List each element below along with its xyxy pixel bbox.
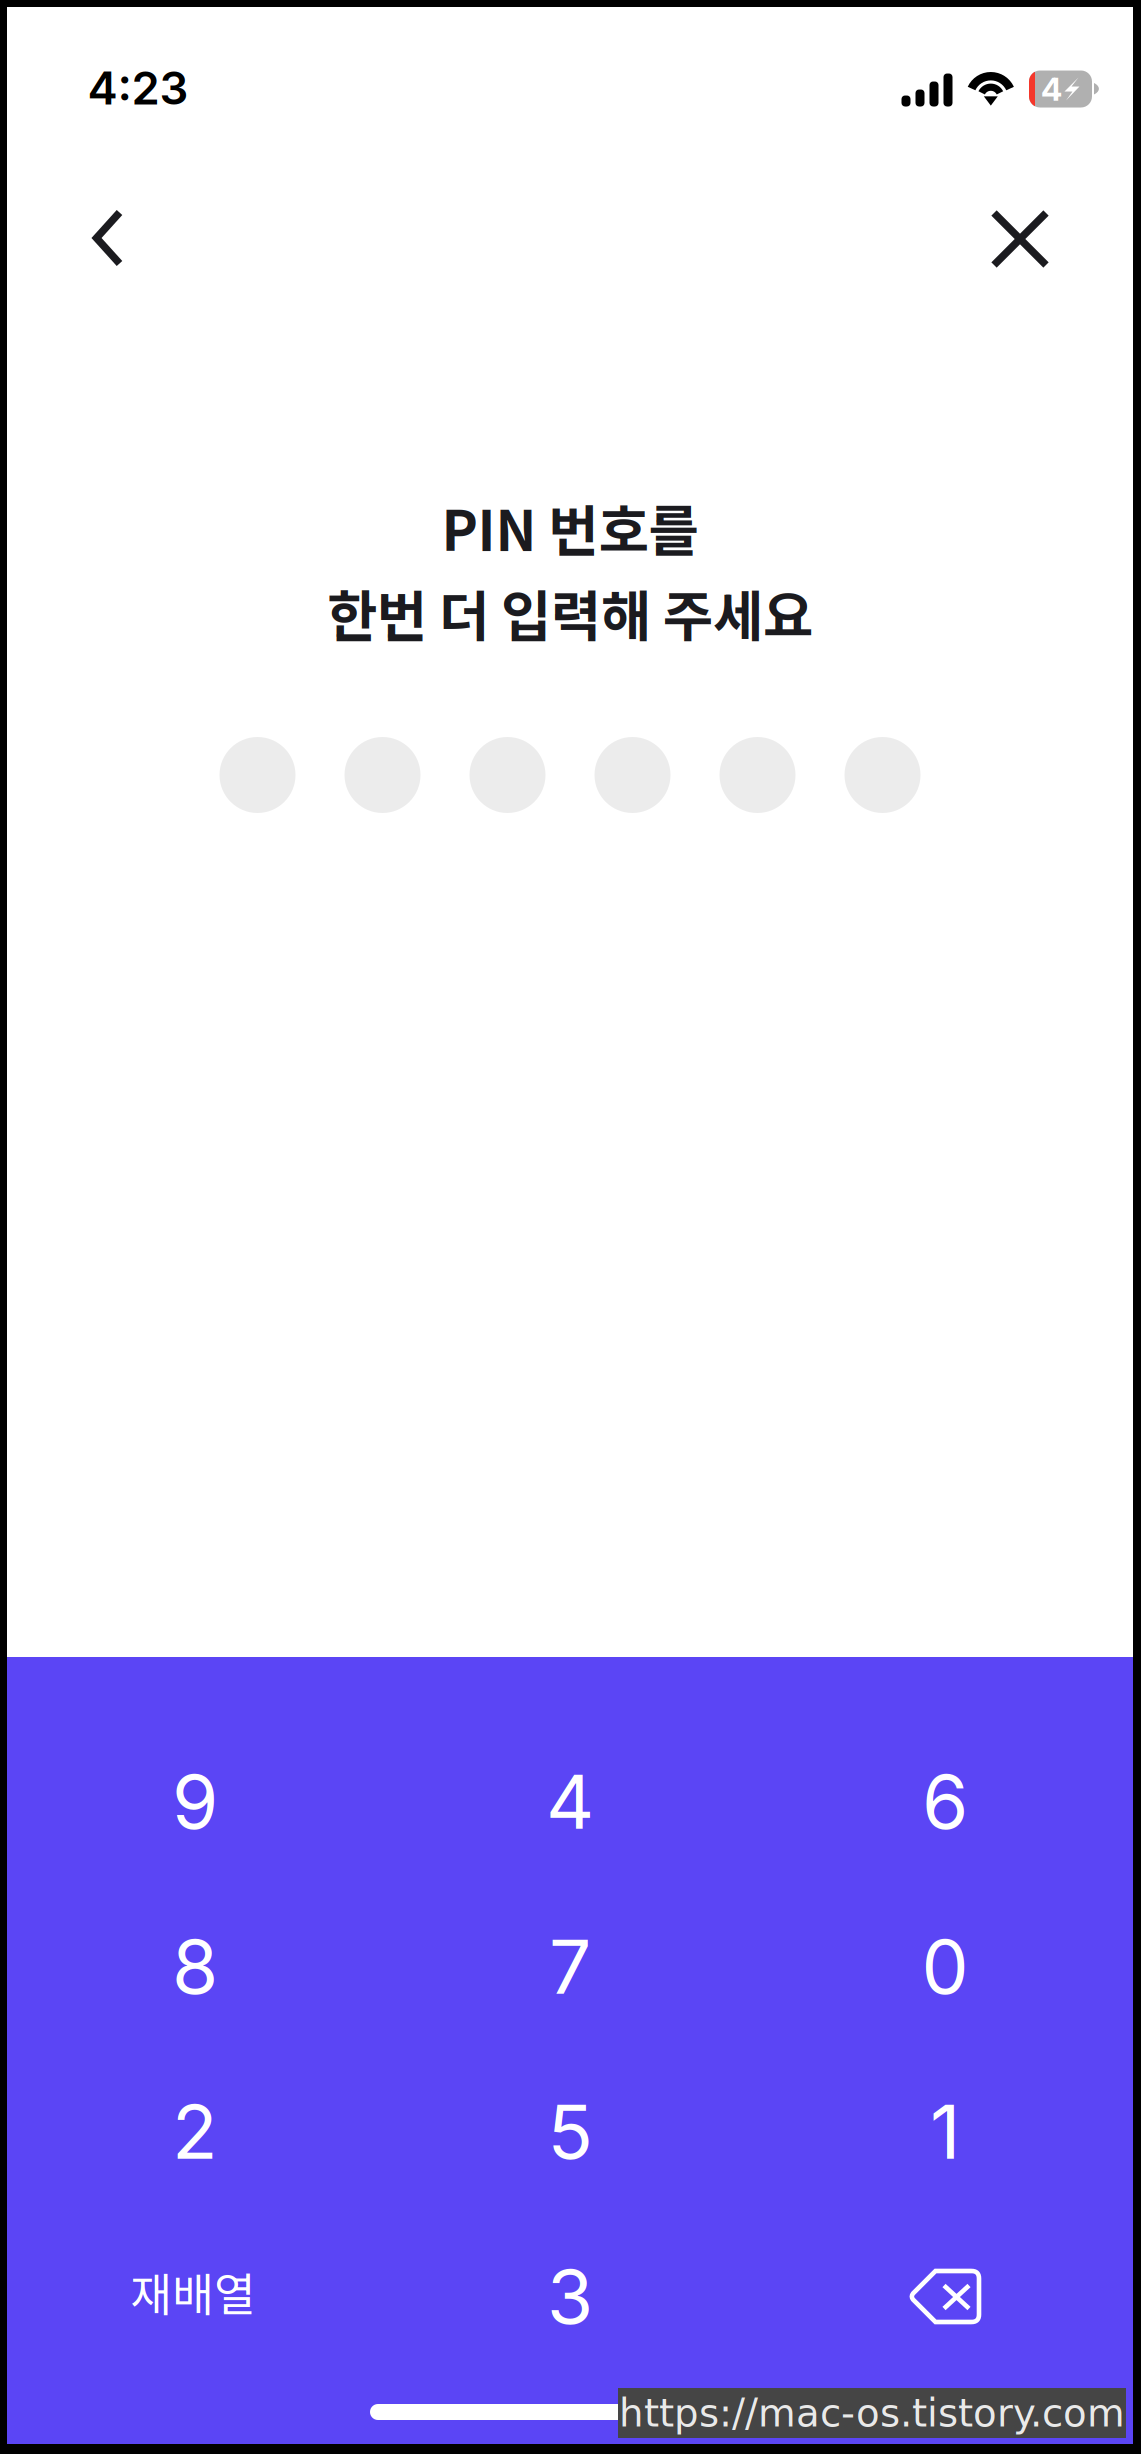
staticText: PIN 번호를 — [441, 487, 698, 567]
staticText: 재배열 — [130, 2259, 256, 2324]
button[interactable]: 재배열 — [7, 2214, 382, 2379]
staticText: 7 — [549, 1921, 591, 2012]
button[interactable]: Delete — [757, 2214, 1132, 2379]
staticText: 4 — [1041, 70, 1062, 108]
staticText: 1 — [930, 2086, 960, 2177]
staticText: 2 — [172, 2086, 218, 2177]
button[interactable]: 3 — [382, 2214, 757, 2379]
staticText: https://mac-os.tistory.com — [619, 2390, 1125, 2435]
staticText: 4:23 — [87, 61, 188, 115]
staticText: 한번 더 입력해 주세요 — [327, 573, 813, 652]
staticText: 4 — [546, 1756, 594, 1847]
button[interactable]: Close — [968, 187, 1072, 291]
staticText: 6 — [922, 1756, 968, 1847]
button[interactable]: 0 — [757, 1884, 1132, 2049]
staticText: 3 — [547, 2251, 593, 2342]
button[interactable]: 8 — [7, 1884, 382, 2049]
button[interactable]: 9 — [7, 1719, 382, 1884]
button[interactable]: 2 — [7, 2049, 382, 2214]
button[interactable]: 4 — [382, 1719, 757, 1884]
staticText: 9 — [172, 1756, 218, 1847]
button[interactable]: 1 — [757, 2049, 1132, 2214]
staticText: 8 — [172, 1921, 218, 2012]
button[interactable]: Back — [56, 186, 160, 290]
button[interactable]: 6 — [757, 1719, 1132, 1884]
staticText: 5 — [547, 2086, 592, 2177]
button[interactable]: 7 — [382, 1884, 757, 2049]
button[interactable]: 5 — [382, 2049, 757, 2214]
staticText: 0 — [921, 1921, 968, 2012]
